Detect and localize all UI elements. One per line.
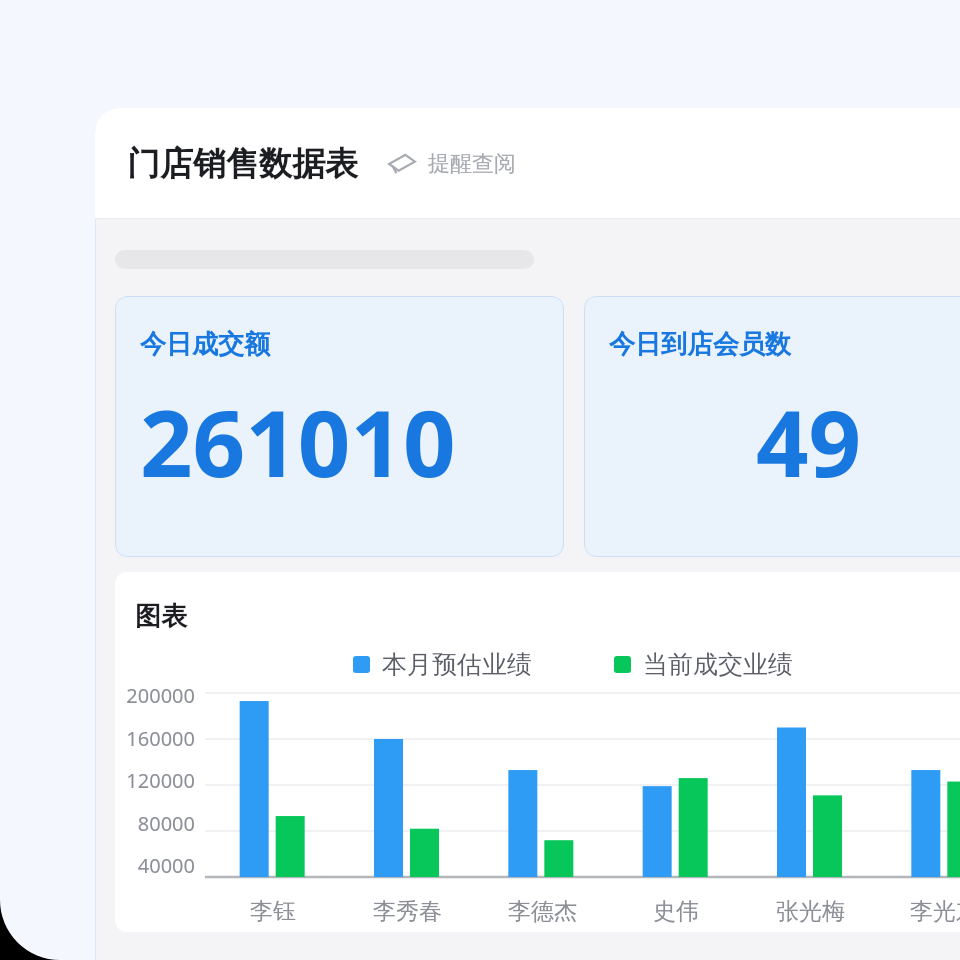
- staticText: 李德杰: [508, 897, 577, 926]
- staticText: 80000: [115, 810, 195, 837]
- staticText: 本月预估业绩: [382, 649, 532, 680]
- staticText: 160000: [115, 725, 195, 752]
- staticText: 史伟: [653, 897, 699, 926]
- staticText: 120000: [115, 767, 195, 794]
- staticText: 40000: [115, 852, 195, 879]
- staticText: 门店销售数据表: [127, 143, 358, 185]
- staticText: 当前成交业绩: [643, 649, 793, 680]
- button[interactable]: 提醒查阅: [388, 144, 516, 184]
- staticText: 李秀春: [373, 897, 442, 926]
- staticText: 今日到店会员数: [609, 328, 791, 361]
- staticText: 张光梅: [776, 897, 845, 926]
- staticText: 李光东: [910, 897, 960, 926]
- button[interactable]: 当前成交业绩: [614, 649, 793, 680]
- staticText: 图表: [135, 600, 187, 633]
- staticText: 今日成交额: [140, 328, 270, 361]
- staticText: 261010: [140, 379, 539, 504]
- staticText: 49: [609, 379, 960, 504]
- staticText: 提醒查阅: [428, 150, 516, 178]
- button[interactable]: 本月预估业绩: [353, 649, 532, 680]
- button[interactable]: 今日到店会员数: [584, 296, 960, 557]
- button[interactable]: 今日成交额: [115, 296, 564, 557]
- staticText: 200000: [115, 682, 195, 709]
- staticText: 李钰: [250, 897, 296, 926]
